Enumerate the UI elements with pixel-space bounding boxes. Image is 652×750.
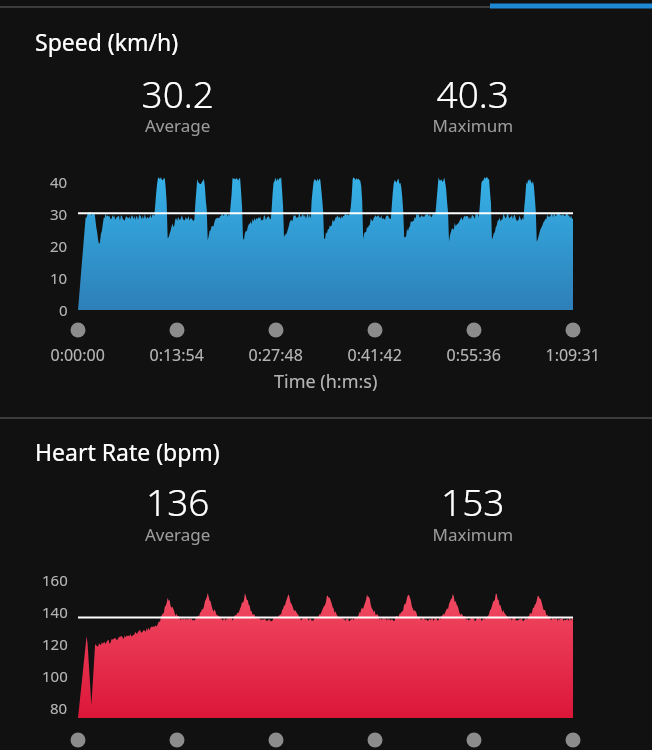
button[interactable]: Speed chart <box>0 0 652 417</box>
button[interactable]: Heart Rate chart <box>0 417 652 750</box>
